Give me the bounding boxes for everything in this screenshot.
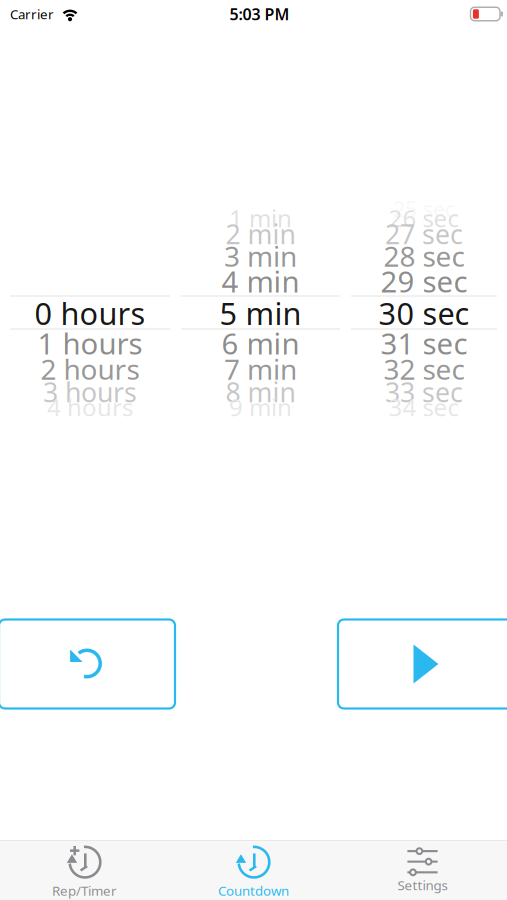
staticText: 26 sec xyxy=(388,202,459,234)
staticText: 3 min xyxy=(224,237,297,275)
button[interactable]: Settings xyxy=(338,841,507,900)
button[interactable]: Reset xyxy=(0,619,175,708)
staticText: 32 sec xyxy=(383,350,464,388)
staticText: 6 min xyxy=(221,323,299,362)
staticText: 25 sec xyxy=(393,195,455,223)
staticText: 2 min xyxy=(225,216,295,252)
staticText: 5 min xyxy=(219,293,301,333)
staticText: 8 min xyxy=(225,374,295,410)
staticText: Countdown xyxy=(218,882,289,899)
staticText: 29 sec xyxy=(380,261,467,300)
staticText: 1 hours xyxy=(37,323,142,362)
button[interactable]: Countdown xyxy=(169,836,338,900)
staticText: 33 sec xyxy=(385,374,463,410)
staticText: 28 sec xyxy=(383,237,464,275)
staticText: Rep/Timer xyxy=(52,882,117,899)
staticText: 31 sec xyxy=(380,323,467,362)
staticText: 0 hours xyxy=(34,293,145,333)
staticText: 4 min xyxy=(221,261,299,300)
staticText: 2 hours xyxy=(40,350,139,388)
staticText: 7 min xyxy=(224,350,297,388)
staticText: 3 hours xyxy=(43,374,137,410)
staticText: 27 sec xyxy=(385,216,463,252)
staticText: 34 sec xyxy=(388,391,459,423)
staticText: 1 min xyxy=(229,202,292,234)
button[interactable]: Rep/Timer xyxy=(0,836,169,900)
staticText: 30 sec xyxy=(378,293,469,333)
staticText: Carrier xyxy=(10,5,54,23)
staticText: 4 hours xyxy=(47,391,133,423)
button[interactable]: Start xyxy=(338,619,507,708)
staticText: Settings xyxy=(397,876,447,894)
staticText: 5:03 PM xyxy=(229,3,289,25)
staticText: 9 min xyxy=(229,391,292,423)
